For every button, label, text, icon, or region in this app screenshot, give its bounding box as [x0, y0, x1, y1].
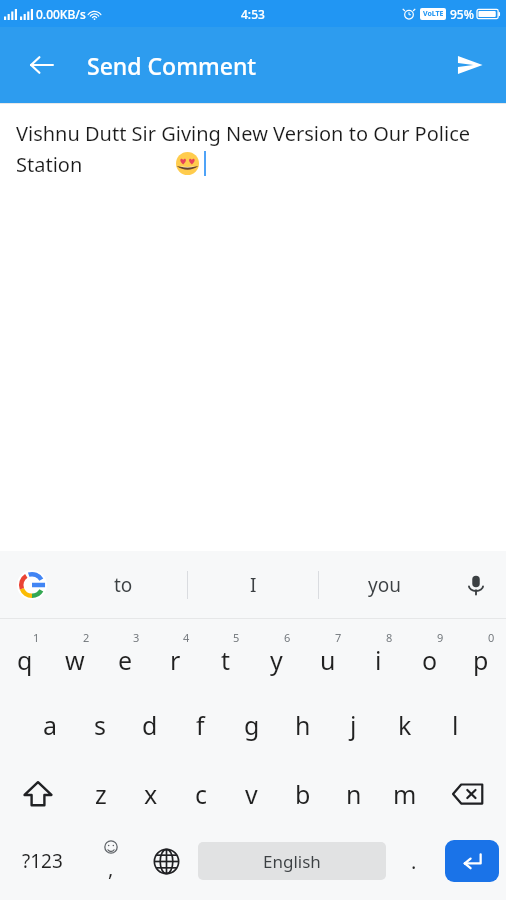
staticText: 4:53 [241, 6, 265, 22]
button[interactable]: Send [446, 41, 494, 89]
staticText: m [393, 777, 417, 811]
staticText: VoLTE [423, 9, 444, 19]
button[interactable]: ?123 [0, 828, 84, 894]
staticText: l [452, 708, 459, 742]
staticText: 2 [83, 630, 90, 645]
button[interactable]: Enter [445, 840, 499, 882]
staticText: I [250, 572, 257, 598]
staticText: o [422, 643, 438, 677]
staticText: v [245, 777, 258, 811]
staticText: English [263, 850, 321, 873]
staticText: j [350, 708, 357, 742]
staticText: 7 [335, 630, 342, 645]
staticText: f [196, 708, 205, 742]
staticText: d [142, 708, 158, 742]
button[interactable]: Change language [138, 828, 194, 894]
staticText: h [295, 708, 311, 742]
button[interactable]: v [226, 759, 277, 828]
staticText: 9 [437, 630, 444, 645]
button[interactable]: j [328, 690, 379, 759]
staticText: 0 [488, 630, 495, 645]
button[interactable]: I [188, 551, 319, 618]
button[interactable]: Google [10, 563, 54, 607]
staticText: ?123 [22, 848, 63, 874]
staticText: 4 [183, 630, 190, 645]
button[interactable]: . [390, 828, 438, 894]
button[interactable]: p [455, 623, 506, 690]
staticText: t [221, 643, 231, 677]
staticText: Send Comment [87, 50, 257, 81]
button[interactable]: i [353, 623, 404, 690]
button[interactable]: g [226, 690, 277, 759]
staticText: q [17, 643, 33, 677]
button[interactable]: Voice input [454, 563, 498, 607]
button[interactable]: y [251, 623, 302, 690]
button[interactable]: e [100, 623, 150, 690]
button[interactable]: b [277, 759, 328, 828]
button[interactable]: o [404, 623, 455, 690]
staticText: w [65, 643, 85, 677]
staticText: e [118, 643, 133, 677]
button[interactable]: x [126, 759, 176, 828]
button[interactable]: r [150, 623, 200, 690]
staticText: . [411, 848, 417, 875]
button[interactable]: you [319, 551, 450, 618]
staticText: i [375, 643, 382, 677]
staticText: you [368, 572, 401, 598]
staticText: 0.00KB/s [36, 6, 86, 22]
button[interactable]: Back [18, 41, 66, 89]
staticText: 1 [33, 630, 40, 645]
staticText: r [170, 643, 181, 677]
button[interactable]: a [25, 690, 75, 759]
staticText: c [195, 777, 208, 811]
button[interactable]: h [277, 690, 328, 759]
button[interactable]: Backspace [430, 759, 506, 828]
button[interactable]: w [50, 623, 100, 690]
button[interactable]: to [58, 551, 188, 618]
staticText: a [43, 708, 58, 742]
button[interactable]: d [125, 690, 175, 759]
button[interactable]: k [379, 690, 430, 759]
staticText: z [95, 777, 107, 811]
button[interactable]: n [328, 759, 379, 828]
button[interactable]: z [76, 759, 126, 828]
staticText: 95% [450, 6, 474, 22]
button[interactable]: t [200, 623, 251, 690]
staticText: Vishnu Dutt Sir Giving New Version to Ou… [16, 120, 492, 177]
button[interactable]: Shift [0, 759, 76, 828]
button[interactable]: c [176, 759, 226, 828]
button[interactable]: f [175, 690, 226, 759]
staticText: u [320, 643, 336, 677]
staticText: s [94, 708, 106, 742]
button[interactable]: q [0, 623, 50, 690]
button[interactable]: English [198, 842, 386, 880]
staticText: n [346, 777, 362, 811]
staticText: 3 [133, 630, 140, 645]
button[interactable]: Comma and emoji [84, 828, 138, 894]
button[interactable]: l [430, 690, 481, 759]
staticText: p [473, 643, 489, 677]
staticText: y [270, 643, 283, 677]
staticText: 6 [284, 630, 291, 645]
staticText: x [144, 777, 158, 811]
staticText: to [114, 572, 133, 598]
staticText: 5 [233, 630, 240, 645]
button[interactable]: m [379, 759, 430, 828]
staticText: 8 [386, 630, 393, 645]
staticText: , [108, 855, 114, 882]
button[interactable]: s [75, 690, 125, 759]
staticText: k [398, 708, 412, 742]
staticText: b [295, 777, 311, 811]
button[interactable]: u [302, 623, 353, 690]
staticText: g [244, 708, 260, 742]
